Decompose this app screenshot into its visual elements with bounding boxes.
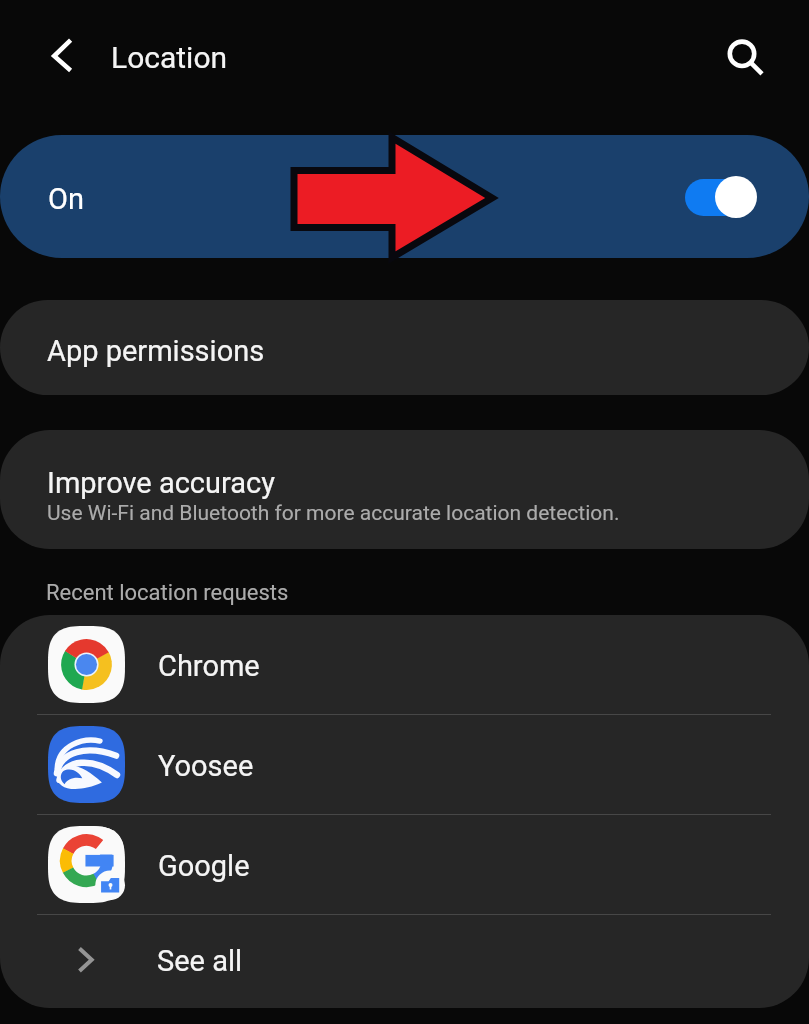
staticText: Location: [111, 40, 228, 75]
button[interactable]: Google: [0, 815, 809, 914]
staticText: See all: [157, 944, 243, 978]
button[interactable]: App permissions: [0, 300, 809, 395]
staticText: Use Wi-Fi and Bluetooth for more accurat…: [47, 501, 620, 526]
button[interactable]: On: [0, 135, 809, 258]
staticText: On: [48, 182, 84, 216]
staticText: App permissions: [47, 334, 265, 368]
button[interactable]: Yoosee: [0, 715, 809, 814]
staticText: Recent location requests: [46, 580, 289, 606]
button[interactable]: Improve accuracy: [0, 430, 809, 549]
button[interactable]: Chrome: [0, 615, 809, 714]
staticText: Google: [158, 849, 250, 883]
button[interactable]: Search: [715, 27, 773, 85]
staticText: Improve accuracy: [47, 466, 275, 500]
staticText: Yoosee: [158, 749, 254, 783]
button[interactable]: Back: [33, 27, 91, 85]
staticText: Chrome: [158, 649, 260, 683]
button[interactable]: See all: [0, 915, 809, 1008]
